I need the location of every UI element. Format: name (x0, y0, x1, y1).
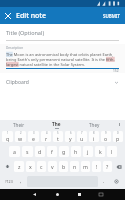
staticText: i (93, 135, 95, 142)
staticText: h (74, 148, 78, 155)
staticText: 8 (93, 131, 95, 135)
button[interactable]: 6 (65, 131, 75, 142)
staticText: a (13, 148, 16, 155)
button[interactable]: Their (0, 120, 37, 129)
staticText: 0 (117, 131, 119, 135)
staticText: l (111, 148, 113, 155)
staticText: ? (106, 163, 109, 170)
staticText: b (62, 163, 66, 170)
staticText: 152 (113, 69, 119, 73)
staticText: The (52, 121, 61, 127)
button[interactable]: Clipboard (0, 77, 125, 88)
button[interactable]: b (59, 161, 68, 172)
staticText: ! (96, 163, 98, 170)
button[interactable]: 7 (77, 131, 87, 142)
button[interactable]: 3 (28, 131, 39, 142)
button[interactable]: . (99, 175, 109, 188)
staticText: d (38, 148, 42, 155)
staticText: z (18, 163, 21, 170)
button[interactable]: 8 (89, 131, 99, 142)
button[interactable]: 5 (53, 131, 63, 142)
staticText: u (80, 135, 84, 142)
button[interactable]: 9 (101, 131, 111, 142)
staticText: x (29, 163, 32, 170)
staticText: 9 (105, 131, 107, 135)
staticText: n (73, 163, 77, 170)
button[interactable]: l (107, 146, 117, 157)
staticText: SUBMIT (103, 13, 120, 19)
button[interactable]: , (16, 175, 26, 188)
staticText: They (89, 122, 100, 128)
button[interactable]: ?123 (1, 175, 16, 188)
staticText: . (103, 178, 105, 185)
button[interactable]: Title (Optional) (0, 24, 125, 41)
staticText: j (87, 148, 89, 155)
button[interactable]: x (26, 161, 35, 172)
button[interactable]: 2 (15, 131, 26, 142)
button[interactable]: SUBMIT (98, 9, 125, 23)
staticText: 5 (57, 131, 59, 135)
button[interactable]: 4 (41, 131, 51, 142)
button[interactable]: Back (23, 189, 46, 200)
button[interactable]: n (70, 161, 79, 172)
staticText: 1 (7, 131, 9, 135)
button[interactable]: Close (0, 8, 16, 24)
staticText: 3 (33, 131, 35, 135)
button[interactable]: ! (92, 161, 101, 172)
button[interactable]: a (9, 146, 20, 157)
staticText: q (6, 135, 10, 142)
staticText: g (62, 148, 66, 155)
staticText: p (116, 135, 120, 142)
button[interactable]: 1 (2, 131, 13, 142)
button[interactable]: v (48, 161, 57, 172)
staticText: t (57, 135, 59, 142)
button[interactable]: Backspace (114, 161, 123, 172)
staticText: y (69, 135, 72, 142)
button[interactable]: k (95, 146, 105, 157)
button[interactable]: s (22, 146, 33, 157)
staticText: 2 (20, 131, 22, 135)
staticText: e (32, 135, 35, 142)
staticText: o (104, 135, 108, 142)
button[interactable]: g (59, 146, 69, 157)
button[interactable]: Settings (110, 176, 123, 187)
staticText: w (18, 135, 23, 142)
staticText: k (99, 148, 102, 155)
button[interactable]: Keyboard (90, 189, 112, 200)
button[interactable]: z (14, 161, 24, 172)
staticText: , (20, 178, 22, 185)
button[interactable]: c (37, 161, 46, 172)
staticText: Edit note (16, 11, 46, 21)
button[interactable]: Shift (2, 161, 12, 172)
staticText: f (51, 148, 53, 155)
staticText: ?123 (5, 179, 13, 184)
staticText: Their (13, 122, 25, 128)
button[interactable]: f (47, 146, 57, 157)
button[interactable]: h (71, 146, 81, 157)
button[interactable]: d (35, 146, 45, 157)
button[interactable]: More suggestions (113, 120, 125, 129)
staticText: c (40, 163, 43, 170)
staticText: 7 (81, 131, 83, 135)
staticText: r (45, 135, 48, 142)
staticText: The Moon is an astronomical body that or… (6, 52, 119, 67)
button[interactable]: Description (0, 44, 125, 73)
staticText: s (26, 148, 29, 155)
staticText: Title (Optional) (6, 29, 45, 36)
staticText: 4 (46, 131, 48, 135)
button[interactable]: ? (103, 161, 112, 172)
button[interactable]: Recents (68, 189, 90, 200)
staticText: Description (6, 46, 24, 50)
staticText: Clipboard (6, 79, 29, 86)
button[interactable]: They (75, 120, 113, 129)
button[interactable]: Home (46, 189, 68, 200)
other: Expand (114, 80, 119, 85)
button[interactable]: m (81, 161, 90, 172)
button[interactable]: j (83, 146, 93, 157)
staticText: 6 (70, 131, 72, 135)
staticText: m (83, 163, 88, 170)
button[interactable]: The (37, 120, 75, 129)
staticText: v (51, 163, 54, 170)
button[interactable]: 0 (113, 131, 123, 142)
